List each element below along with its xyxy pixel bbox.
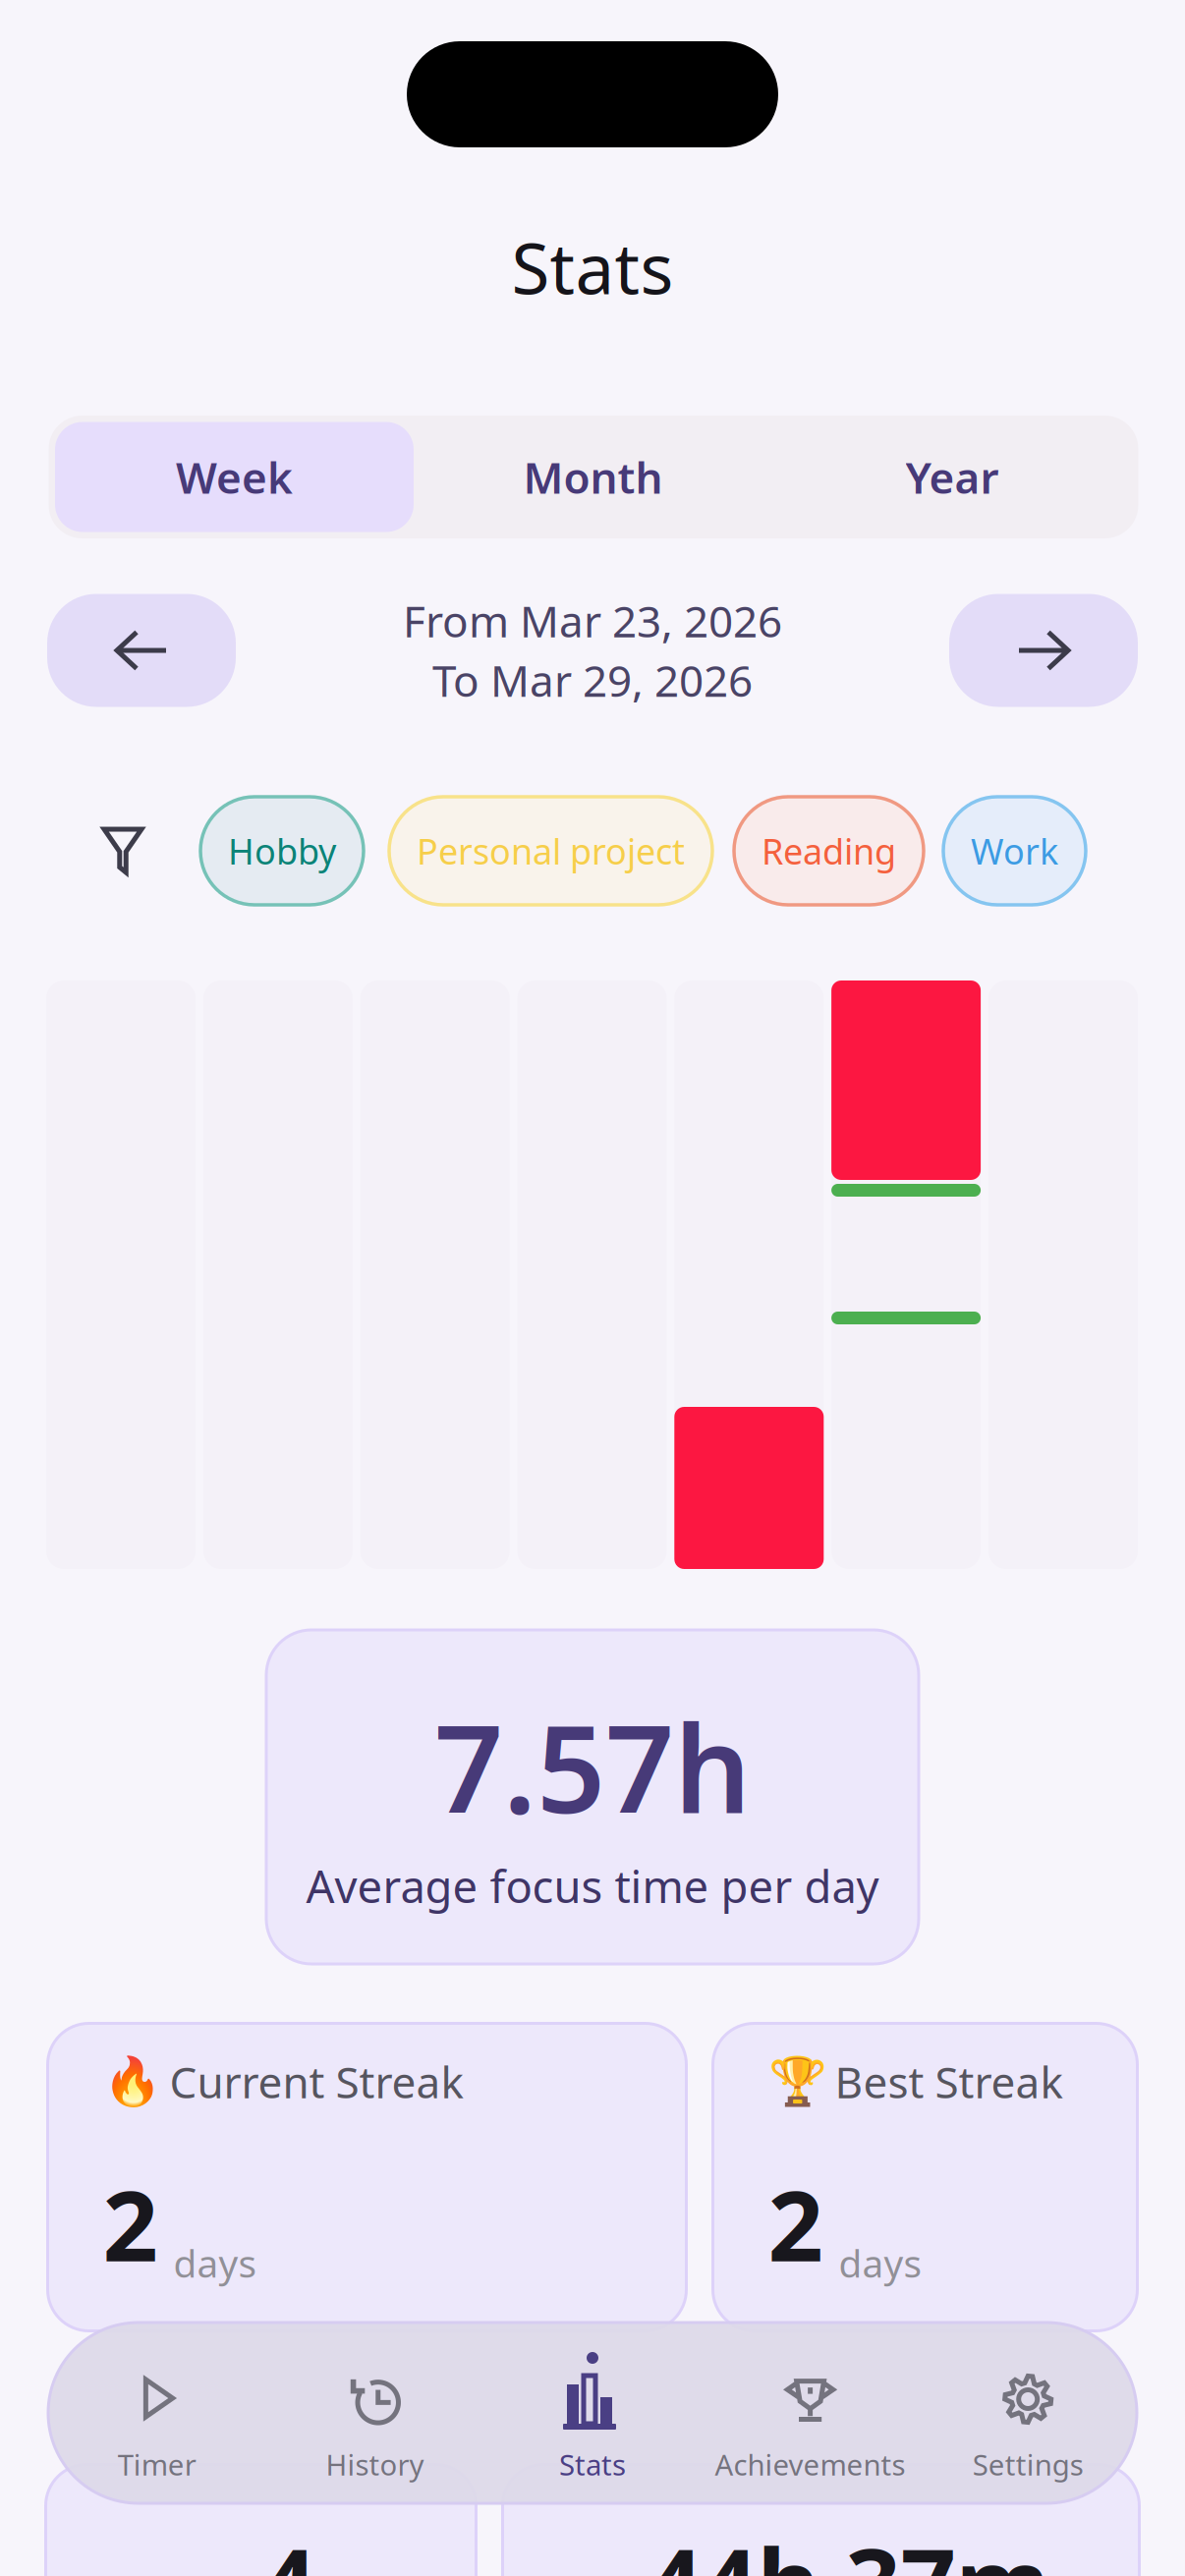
staticText: 2 bbox=[103, 2159, 158, 2288]
button[interactable]: Settings bbox=[919, 2323, 1137, 2503]
staticText: To Mar 29, 2026 bbox=[432, 651, 753, 709]
staticText: From Mar 23, 2026 bbox=[403, 592, 782, 649]
staticText: 🏆 bbox=[768, 2055, 827, 2108]
staticText: 4 bbox=[261, 2518, 316, 2576]
staticText: Personal project bbox=[417, 827, 685, 874]
button[interactable]: Year bbox=[772, 422, 1132, 532]
button[interactable]: History bbox=[266, 2323, 484, 2503]
staticText: Average focus time per day bbox=[306, 1856, 879, 1915]
staticText: Stats bbox=[511, 221, 674, 313]
button[interactable]: Filter bbox=[88, 796, 157, 906]
staticText: Work bbox=[971, 827, 1058, 874]
button[interactable]: Work bbox=[943, 797, 1086, 905]
staticText: Achievements bbox=[715, 2445, 906, 2484]
staticText: Year bbox=[905, 448, 999, 506]
button[interactable]: Personal project bbox=[389, 797, 712, 905]
staticText: 🔥 bbox=[103, 2055, 162, 2108]
staticText: Stats bbox=[559, 2445, 626, 2484]
staticText: days bbox=[173, 2238, 257, 2288]
button[interactable]: Month bbox=[414, 422, 772, 532]
button[interactable]: Next period bbox=[949, 594, 1138, 707]
button[interactable]: Stats bbox=[484, 2323, 701, 2503]
staticText: 44h 37m bbox=[647, 2518, 1050, 2576]
button[interactable]: Week bbox=[55, 422, 414, 532]
staticText: Timer bbox=[118, 2445, 196, 2484]
staticText: History bbox=[326, 2445, 424, 2484]
staticText: Reading bbox=[762, 827, 896, 874]
staticText: Week bbox=[176, 448, 293, 506]
button[interactable]: Reading bbox=[734, 797, 924, 905]
staticText: Month bbox=[523, 448, 663, 506]
button[interactable]: Timer bbox=[48, 2323, 266, 2503]
button[interactable]: Hobby bbox=[200, 797, 364, 905]
staticText: 2 bbox=[768, 2159, 823, 2288]
staticText: Best Streak bbox=[835, 2053, 1063, 2110]
staticText: 7.57h bbox=[434, 1686, 751, 1846]
staticText: Hobby bbox=[228, 827, 336, 874]
staticText: Current Streak bbox=[169, 2053, 463, 2110]
staticText: Settings bbox=[972, 2445, 1083, 2484]
staticText: days bbox=[839, 2238, 922, 2288]
button[interactable]: Achievements bbox=[701, 2323, 919, 2503]
button[interactable]: Previous period bbox=[47, 594, 236, 707]
